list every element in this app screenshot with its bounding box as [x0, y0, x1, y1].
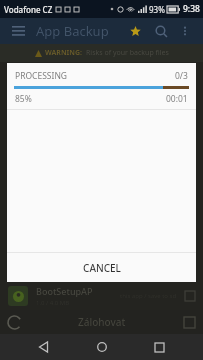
staticText: 9:38: [183, 3, 200, 15]
button[interactable]: Recent apps: [146, 334, 172, 360]
staticText: WARNING:: [45, 48, 83, 58]
button[interactable]: More options: [175, 21, 195, 41]
staticText: CANCEL: [83, 261, 121, 275]
staticText: App Backup: [36, 22, 109, 40]
staticText: 85%: [15, 93, 32, 105]
staticText: Zálohovat: [78, 315, 126, 329]
staticText: 0/3: [175, 70, 188, 82]
button[interactable]: Favorites: [125, 21, 145, 41]
staticText: BootSetupAP: [36, 285, 93, 297]
button[interactable]: Search: [151, 21, 171, 41]
staticText: 93%: [149, 4, 165, 15]
button[interactable]: CANCEL: [7, 253, 196, 282]
staticText: PROCESSING: [15, 70, 68, 82]
staticText: Vodafone CZ: [4, 4, 53, 15]
staticText: 00:01: [166, 93, 188, 105]
button[interactable]: Open navigation drawer: [8, 21, 28, 41]
button[interactable]: BootSetupAP: [0, 282, 203, 310]
button[interactable]: Home: [89, 334, 115, 360]
button[interactable]: Back: [31, 334, 57, 360]
button[interactable]: Zálohovat: [0, 310, 203, 334]
staticText: Risks of your backup files: [86, 48, 169, 58]
